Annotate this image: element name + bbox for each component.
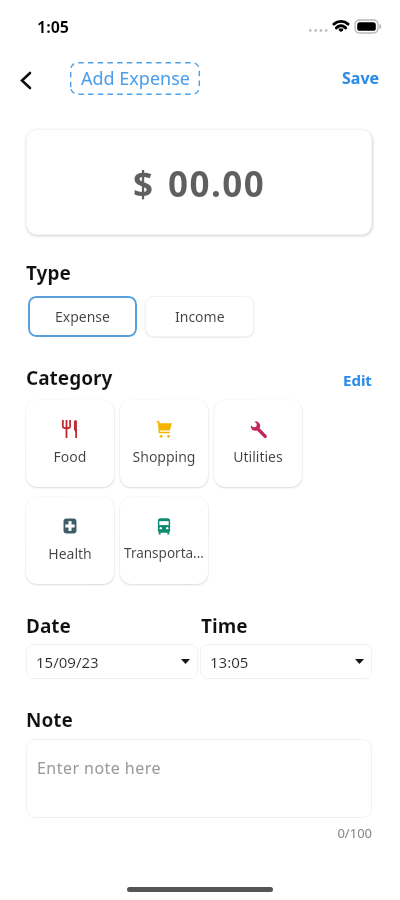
button[interactable]: Save bbox=[337, 67, 385, 89]
staticText: 1:05 bbox=[37, 16, 69, 38]
staticText: 13:05 bbox=[210, 652, 249, 672]
staticText: Transporta... bbox=[122, 544, 206, 562]
staticText: Expense bbox=[55, 307, 110, 326]
button[interactable]: $ bbox=[26, 129, 372, 235]
button[interactable]: Enter note here bbox=[26, 739, 372, 818]
staticText: Time bbox=[201, 613, 248, 639]
staticText: $ bbox=[133, 160, 154, 208]
staticText: 00.00 bbox=[168, 160, 266, 208]
staticText: Food bbox=[28, 447, 112, 466]
staticText: 0/100 bbox=[26, 824, 372, 842]
staticText: Type bbox=[26, 260, 71, 286]
staticText: Note bbox=[26, 707, 73, 733]
staticText: Date bbox=[26, 613, 201, 639]
staticText: Save bbox=[342, 67, 380, 89]
button[interactable]: Expense bbox=[28, 296, 137, 337]
staticText: Shopping bbox=[122, 447, 206, 466]
button[interactable]: Shopping bbox=[120, 400, 208, 487]
staticText: Add Expense bbox=[81, 66, 190, 91]
button[interactable]: Add Expense bbox=[70, 62, 200, 95]
staticText: Category bbox=[26, 365, 113, 391]
staticText: Edit bbox=[343, 370, 372, 390]
staticText: Income bbox=[175, 307, 225, 326]
button[interactable]: Health bbox=[26, 497, 114, 584]
button[interactable]: Back bbox=[12, 66, 40, 94]
staticText: Enter note here bbox=[37, 757, 161, 779]
button[interactable]: Food bbox=[26, 400, 114, 487]
button[interactable]: Transporta... bbox=[120, 497, 208, 584]
button[interactable]: Edit bbox=[343, 370, 372, 390]
button[interactable]: 15/09/23 bbox=[26, 644, 198, 679]
staticText: Health bbox=[28, 544, 112, 563]
button[interactable]: 13:05 bbox=[200, 644, 372, 679]
button[interactable]: Utilities bbox=[214, 400, 302, 487]
button[interactable]: Income bbox=[145, 296, 254, 337]
staticText: 15/09/23 bbox=[36, 652, 99, 672]
staticText: Utilities bbox=[216, 447, 300, 466]
